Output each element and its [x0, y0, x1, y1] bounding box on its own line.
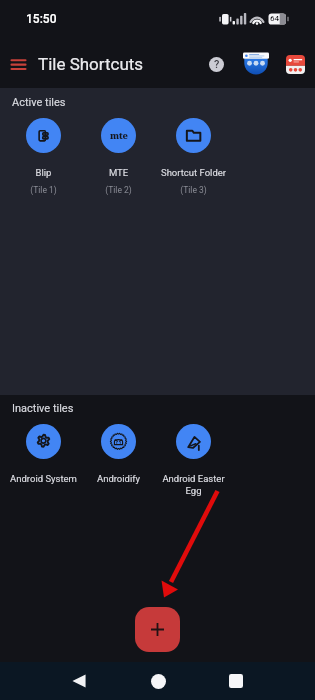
button[interactable]: Android Easter Egg: [156, 424, 231, 496]
staticText: Tile Shortcuts: [38, 54, 144, 74]
button[interactable]: Open navigation menu: [0, 46, 37, 83]
button[interactable]: mte: [81, 118, 156, 195]
staticText: Android System: [6, 473, 81, 484]
staticText: ?: [214, 58, 220, 71]
button[interactable]: Shortcut tiles: [276, 45, 315, 84]
staticText: 64: [270, 14, 280, 23]
button[interactable]: Help: [196, 44, 236, 84]
button[interactable]: Recent apps: [217, 662, 255, 700]
staticText: (Tile 2): [81, 185, 156, 195]
button[interactable]: Blip: [6, 118, 81, 195]
button[interactable]: Androidify: [81, 424, 156, 484]
staticText: mte: [110, 129, 128, 141]
button[interactable]: Shortcut Folder: [156, 118, 231, 195]
staticText: Blip: [6, 167, 81, 178]
staticText: 15:50: [26, 12, 57, 26]
staticText: (Tile 3): [156, 185, 231, 195]
button[interactable]: Quick settings tiles: [236, 44, 276, 84]
staticText: Inactive tiles: [12, 402, 74, 415]
staticText: Active tiles: [12, 96, 66, 109]
button[interactable]: Home: [139, 662, 177, 700]
staticText: Android Easter Egg: [156, 473, 231, 496]
button[interactable]: Back: [60, 662, 98, 700]
staticText: Shortcut Folder: [156, 167, 231, 178]
staticText: Androidify: [81, 473, 156, 484]
button[interactable]: Android System: [6, 424, 81, 484]
staticText: (Tile 1): [6, 185, 81, 195]
button[interactable]: Add shortcut: [135, 607, 180, 652]
staticText: MTE: [81, 167, 156, 178]
